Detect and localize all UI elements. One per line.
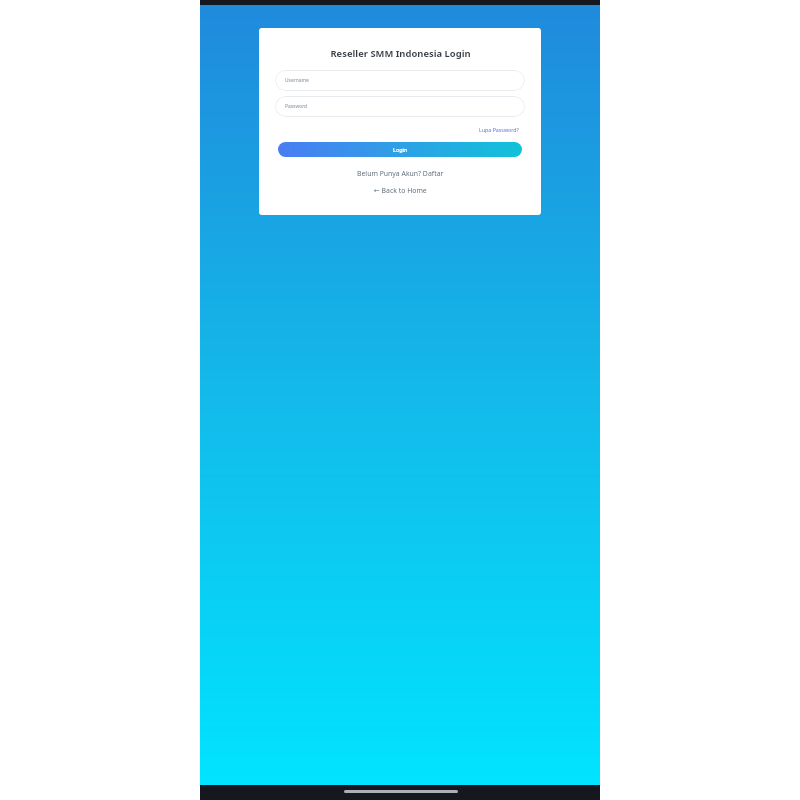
button[interactable]: Belum Punya Akun? Daftar xyxy=(259,168,541,179)
button[interactable]: Password xyxy=(275,96,525,117)
staticText: ← Back to Home xyxy=(374,186,427,195)
staticText: Password xyxy=(285,103,308,110)
button[interactable]: Username xyxy=(275,70,525,91)
button[interactable]: ← Back to Home xyxy=(259,185,541,196)
button[interactable]: Login xyxy=(278,142,522,157)
staticText: Lupa Password? xyxy=(479,126,519,133)
staticText: Reseller SMM Indonesia Login xyxy=(330,47,471,60)
button[interactable]: Lupa Password? xyxy=(275,124,519,135)
button[interactable]: Home gesture bar xyxy=(344,790,458,793)
staticText: Belum Punya Akun? Daftar xyxy=(357,169,444,178)
staticText: Username xyxy=(285,77,309,84)
staticText: Login xyxy=(393,146,408,153)
